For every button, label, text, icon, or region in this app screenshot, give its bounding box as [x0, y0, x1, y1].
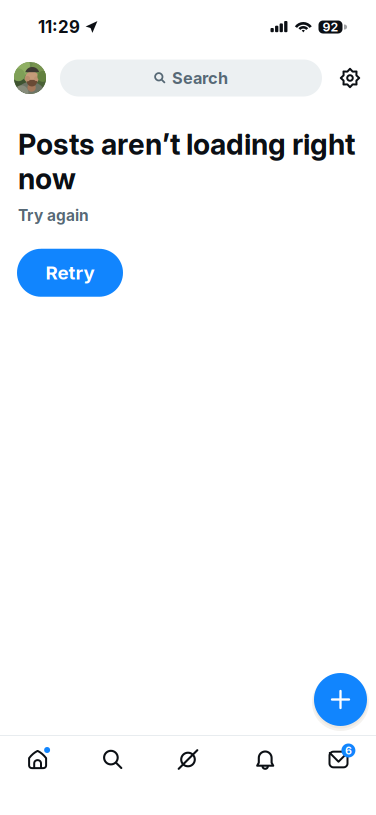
- staticText: Retry: [45, 261, 94, 284]
- button[interactable]: Retry: [17, 249, 123, 297]
- button[interactable]: Notifications: [226, 732, 301, 786]
- staticText: 11:29: [38, 17, 80, 37]
- staticText: Try again: [18, 206, 89, 225]
- button[interactable]: Home: [0, 732, 75, 786]
- staticText: Search: [172, 68, 228, 88]
- staticText: 6: [345, 744, 352, 757]
- button[interactable]: Messages: [301, 732, 376, 786]
- button[interactable]: Search: [75, 732, 150, 786]
- button[interactable]: Feeds: [150, 732, 226, 786]
- button[interactable]: Profile: [14, 62, 46, 94]
- button[interactable]: Settings: [338, 66, 362, 90]
- button[interactable]: Search: [60, 59, 322, 96]
- staticText: 92: [322, 20, 338, 34]
- staticText: Posts aren’t loading right now: [18, 127, 355, 196]
- button[interactable]: New post: [312, 671, 369, 728]
